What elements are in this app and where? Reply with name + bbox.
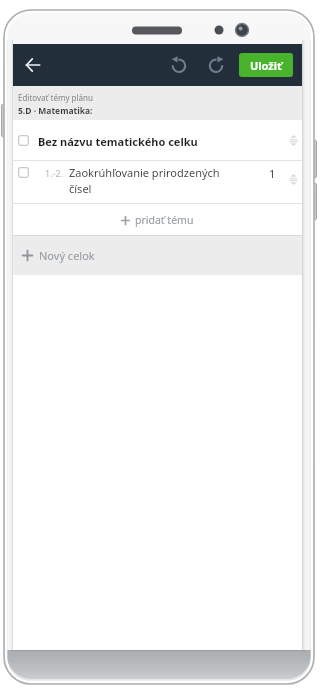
button[interactable]: pridať tému <box>13 204 302 235</box>
button[interactable]: Bez názvu tematického celku <box>13 120 302 160</box>
staticText: 5.D · Matematika: <box>18 105 93 117</box>
button[interactable] <box>204 53 228 77</box>
staticText: Bez názvu tematického celku <box>38 134 198 149</box>
staticText: Uložiť <box>250 58 282 73</box>
staticText: pridať tému <box>135 213 194 227</box>
button[interactable] <box>13 44 53 86</box>
staticText: 1 <box>269 166 276 181</box>
button[interactable]: Nový celok <box>22 248 95 263</box>
staticText: Zaokrúhľovanie prirodzených <box>69 165 220 180</box>
button[interactable]: 1.-2. <box>13 161 302 203</box>
staticText: Nový celok <box>39 248 95 263</box>
staticText: čísel <box>69 181 92 196</box>
button[interactable]: Uložiť <box>239 53 293 77</box>
button[interactable] <box>167 53 191 77</box>
staticText: 1.-2. <box>45 167 64 179</box>
staticText: Editovať témy plánu <box>18 92 93 103</box>
